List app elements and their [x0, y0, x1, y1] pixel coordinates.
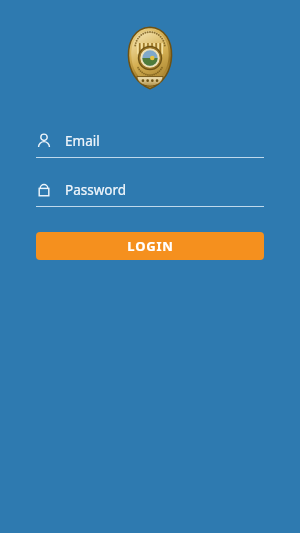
other: Lock: [36, 182, 52, 198]
button[interactable]: Person: [36, 129, 264, 158]
staticText: Email: [65, 132, 100, 150]
staticText: LOGIN: [127, 237, 174, 255]
staticText: Password: [65, 181, 127, 199]
other: Person: [36, 133, 52, 149]
button[interactable]: Lock: [36, 178, 264, 207]
button[interactable]: LOGIN: [36, 232, 264, 260]
